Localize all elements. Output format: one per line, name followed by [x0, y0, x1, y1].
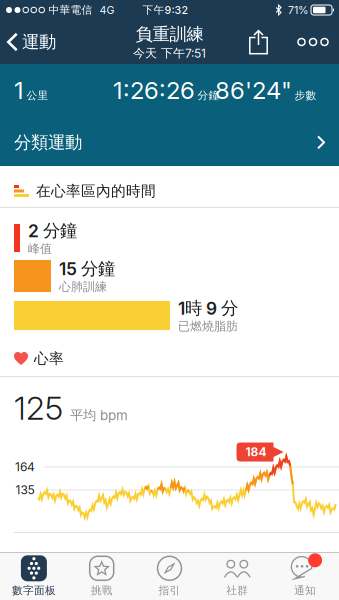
staticText: 中華電信	[48, 3, 92, 16]
staticText: 86'24"	[215, 76, 292, 104]
staticText: 下午9:32	[142, 3, 188, 16]
staticText: 125	[14, 389, 63, 427]
staticText: 挑戰	[91, 584, 113, 597]
button[interactable]: 數字面板	[0, 555, 68, 597]
staticText: 今天 下午7:51	[133, 46, 206, 60]
button[interactable]: 通知	[271, 555, 339, 597]
staticText: 184	[245, 445, 266, 459]
staticText: 平均 bpm	[70, 407, 128, 423]
button[interactable]: 分類運動	[0, 132, 339, 153]
staticText: 135	[15, 483, 34, 497]
staticText: 2 分鐘	[28, 220, 77, 241]
staticText: 運動	[22, 31, 56, 53]
staticText: 數字面板	[12, 584, 56, 597]
button[interactable]: 分享	[249, 29, 298, 54]
staticText: 1時 9 分	[178, 297, 238, 319]
button[interactable]: 運動	[0, 31, 56, 53]
staticText: 心肺訓練	[59, 279, 107, 294]
staticText: 分鐘	[197, 89, 219, 102]
staticText: 通知	[294, 584, 316, 597]
staticText: 社群	[226, 584, 248, 597]
staticText: 心率	[34, 349, 64, 367]
button[interactable]: 社群	[203, 555, 271, 597]
staticText: 1:26:26	[113, 76, 195, 104]
button[interactable]: 更多	[298, 38, 339, 45]
staticText: 負重訓練	[135, 23, 203, 45]
staticText: 已燃燒脂肪	[178, 319, 238, 333]
staticText: 164	[15, 460, 35, 474]
staticText: 15 分鐘	[59, 258, 115, 279]
staticText: 1	[14, 76, 24, 104]
staticText: 指引	[158, 584, 180, 597]
staticText: 公里	[26, 89, 48, 102]
staticText: 在心率區內的時間	[36, 182, 156, 200]
button[interactable]: 指引	[136, 555, 203, 597]
staticText: 分類運動	[14, 132, 82, 153]
staticText: 4G	[99, 4, 114, 16]
button[interactable]: 挑戰	[68, 555, 136, 597]
staticText: 步數	[294, 89, 316, 102]
staticText: 71%	[288, 4, 308, 16]
staticText: 峰值	[28, 241, 52, 256]
